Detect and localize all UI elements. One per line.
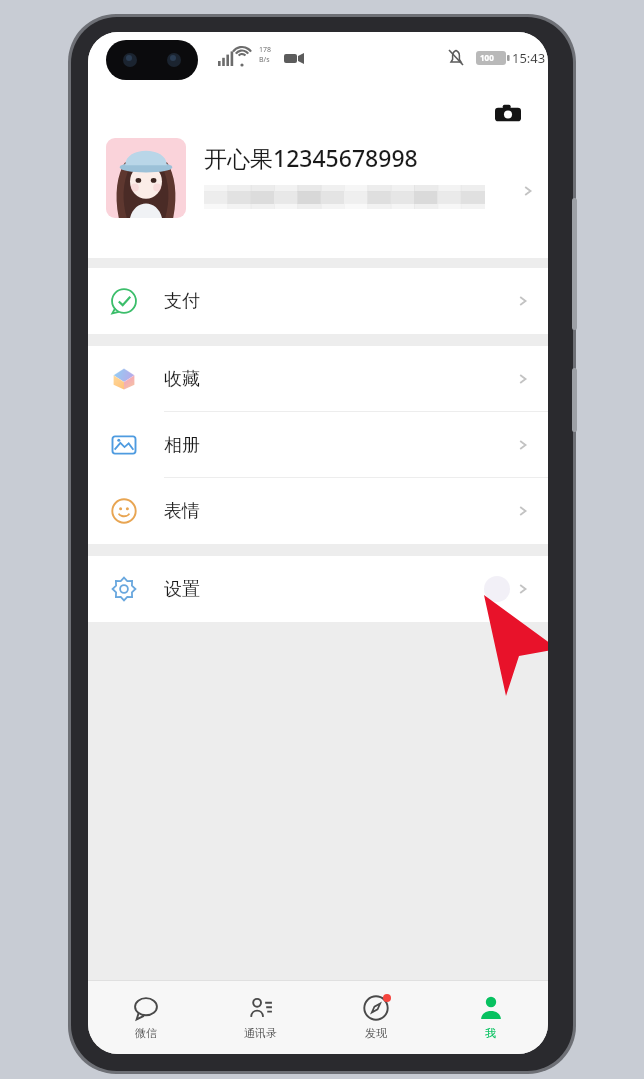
- staticText: 通讯录: [244, 1026, 277, 1040]
- staticText: 发现: [365, 1026, 387, 1040]
- staticText: 178: [259, 45, 272, 55]
- button[interactable]: 开心果12345678998: [88, 134, 548, 244]
- staticText: 表情: [164, 500, 200, 523]
- staticText: 设置: [164, 578, 200, 601]
- staticText: B/s: [259, 55, 270, 65]
- staticText: 微信: [135, 1026, 157, 1040]
- button[interactable]: 微信: [88, 980, 203, 1054]
- staticText: 收藏: [164, 368, 200, 391]
- staticText: 我: [485, 1026, 496, 1040]
- staticText: 支付: [164, 290, 200, 313]
- button[interactable]: 设置: [88, 556, 548, 622]
- staticText: 100: [480, 52, 494, 63]
- staticText: 开心果12345678998: [204, 142, 418, 173]
- button[interactable]: 支付: [88, 268, 548, 334]
- button[interactable]: 发现: [318, 980, 433, 1054]
- button[interactable]: 我: [433, 980, 548, 1054]
- button[interactable]: 通讯录: [203, 980, 318, 1054]
- button[interactable]: 相册: [88, 412, 548, 478]
- button[interactable]: Camera: [484, 90, 532, 138]
- staticText: 15:43: [512, 49, 546, 67]
- button[interactable]: 表情: [88, 478, 548, 544]
- button[interactable]: 收藏: [88, 346, 548, 412]
- staticText: 相册: [164, 434, 200, 457]
